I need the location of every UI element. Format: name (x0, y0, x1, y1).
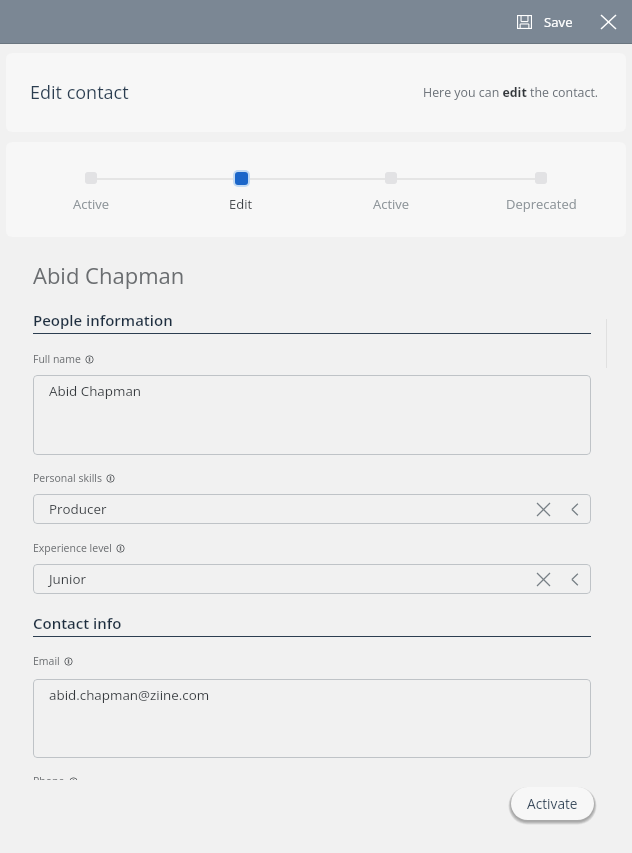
staticText: Email (33, 654, 60, 668)
staticText: People information (33, 310, 173, 330)
staticText: Experience level (33, 541, 112, 555)
button[interactable]: Close (591, 5, 625, 39)
staticText: abid.chapman@ziine.com (49, 686, 210, 704)
staticText: Abid Chapman (33, 260, 185, 290)
button[interactable]: Open value help (560, 565, 588, 593)
staticText: Junior (49, 570, 86, 588)
button[interactable]: Open value help (560, 495, 588, 523)
button[interactable]: Producer (33, 494, 591, 524)
button[interactable] (79, 166, 103, 190)
staticText: Activate (527, 794, 578, 813)
staticText: Edit (229, 195, 253, 213)
button[interactable]: Clear (530, 566, 556, 592)
staticText: Contact info (33, 613, 122, 633)
staticText: Producer (49, 500, 107, 518)
button[interactable]: Save (511, 7, 579, 37)
staticText: Phone (33, 774, 65, 780)
button[interactable] (229, 166, 253, 190)
button[interactable] (379, 166, 403, 190)
staticText: Save (544, 13, 573, 31)
button[interactable]: abid.chapman@ziine.com (33, 679, 591, 758)
staticText: Active (373, 195, 410, 213)
staticText: Active (73, 195, 110, 213)
staticText: Full name (33, 352, 81, 366)
button[interactable]: Activate (511, 787, 594, 820)
staticText: Here you can edit the contact. (423, 84, 599, 101)
staticText: Abid Chapman (49, 382, 142, 400)
button[interactable]: Clear (530, 496, 556, 522)
button[interactable]: Junior (33, 564, 591, 594)
staticText: Deprecated (506, 195, 577, 213)
staticText: Personal skills (33, 471, 102, 485)
staticText: Edit contact (30, 80, 129, 105)
button[interactable] (529, 166, 553, 190)
button[interactable]: Abid Chapman (33, 375, 591, 455)
